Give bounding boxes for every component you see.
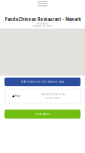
staticText: Newark, NJ 07102 bbox=[33, 25, 52, 27]
staticText: View Menu bbox=[34, 112, 50, 116]
staticText: 345 Broad St bbox=[36, 23, 48, 25]
staticText: Start order on the mobile App bbox=[20, 80, 64, 83]
staticText: on our App! bbox=[44, 96, 60, 99]
staticText: Pay with Apple Pay bbox=[40, 93, 64, 96]
staticText: Panda Chinese Restaurant - Newark bbox=[4, 17, 80, 22]
button[interactable]: View Menu bbox=[4, 110, 80, 119]
button[interactable]: Start order on the mobile App bbox=[4, 78, 80, 86]
staticText: Pay bbox=[15, 94, 21, 98]
